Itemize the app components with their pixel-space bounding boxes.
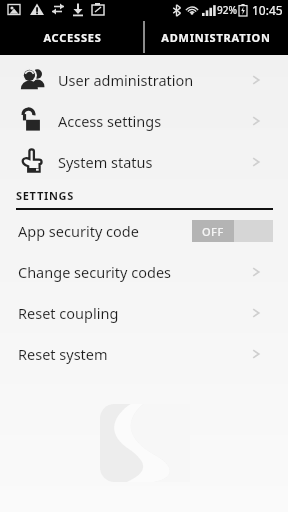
- button[interactable]: OFF: [192, 220, 273, 242]
- button[interactable]: System status: [0, 141, 288, 182]
- staticText: OFF: [202, 224, 224, 239]
- staticText: Reset system: [18, 344, 108, 364]
- button[interactable]: App security code: [0, 210, 288, 251]
- staticText: ACCESSES: [43, 30, 102, 45]
- staticText: Reset coupling: [18, 303, 119, 323]
- staticText: App security code: [18, 221, 139, 241]
- button[interactable]: Reset coupling: [0, 292, 288, 333]
- staticText: Access settings: [58, 111, 162, 131]
- button[interactable]: User administration: [0, 59, 288, 100]
- button[interactable]: Access settings: [0, 100, 288, 141]
- button[interactable]: Reset system: [0, 333, 288, 374]
- staticText: 10:45: [252, 2, 283, 18]
- staticText: SETTINGS: [16, 188, 74, 203]
- staticText: ADMINISTRATION: [161, 30, 271, 45]
- button[interactable]: Change security codes: [0, 251, 288, 292]
- button[interactable]: ADMINISTRATION: [144, 19, 288, 55]
- staticText: 92%: [217, 3, 237, 17]
- button[interactable]: ACCESSES: [0, 19, 144, 55]
- staticText: User administration: [58, 70, 194, 90]
- staticText: System status: [58, 152, 153, 172]
- staticText: Change security codes: [18, 262, 172, 282]
